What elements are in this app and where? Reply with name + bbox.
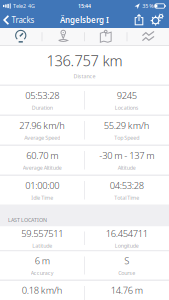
button[interactable]: Share: [134, 14, 151, 26]
button[interactable]: Settings: [151, 14, 169, 26]
button[interactable]: Tracks: [0, 15, 34, 25]
staticText: 0.18 km/h: [22, 284, 63, 296]
staticText: 16.454711: [106, 227, 148, 240]
staticText: 01:00:00: [25, 179, 59, 192]
staticText: 60.70 m: [26, 149, 58, 162]
staticText: Tracks: [11, 15, 34, 25]
staticText: 05:53:28: [25, 89, 59, 102]
button[interactable]: Map: [85, 28, 127, 45]
staticText: Altitude: [118, 164, 136, 171]
button[interactable]: Statistics: [0, 28, 42, 45]
staticText: Idle Time: [31, 194, 53, 201]
button[interactable]: Charts: [127, 28, 169, 45]
button[interactable]: Locations: [42, 28, 84, 45]
staticText: 9245: [117, 89, 137, 102]
staticText: 59.557511: [21, 227, 63, 240]
staticText: Accuracy: [31, 269, 54, 276]
staticText: 15:44: [78, 2, 91, 10]
staticText: 04:53:28: [110, 179, 144, 192]
staticText: Distance: [73, 73, 95, 80]
staticText: LAST LOCATION: [8, 216, 47, 223]
staticText: Total Time: [114, 194, 139, 201]
staticText: S: [124, 254, 129, 267]
staticText: 136.757 km: [46, 51, 122, 70]
staticText: Latitude: [32, 242, 52, 249]
staticText: Locations: [115, 104, 139, 111]
staticText: -30 m - 137 m: [99, 149, 154, 162]
staticText: Tele2: [13, 2, 26, 10]
staticText: 14.76 m: [111, 284, 143, 296]
staticText: 4G: [28, 2, 35, 10]
staticText: 55.29 km/h: [104, 119, 150, 132]
staticText: Longitude: [115, 242, 139, 249]
staticText: Duration: [32, 104, 53, 111]
staticText: 27.96 km/h: [19, 119, 65, 132]
staticText: Course: [118, 269, 135, 276]
staticText: 6 m: [35, 254, 50, 267]
staticText: Average Altitude: [23, 164, 62, 171]
staticText: Top Speed: [114, 134, 139, 141]
staticText: Average Speed: [24, 134, 60, 141]
staticText: 35 %: [142, 2, 153, 10]
staticText: Ängelsberg I: [60, 15, 109, 25]
